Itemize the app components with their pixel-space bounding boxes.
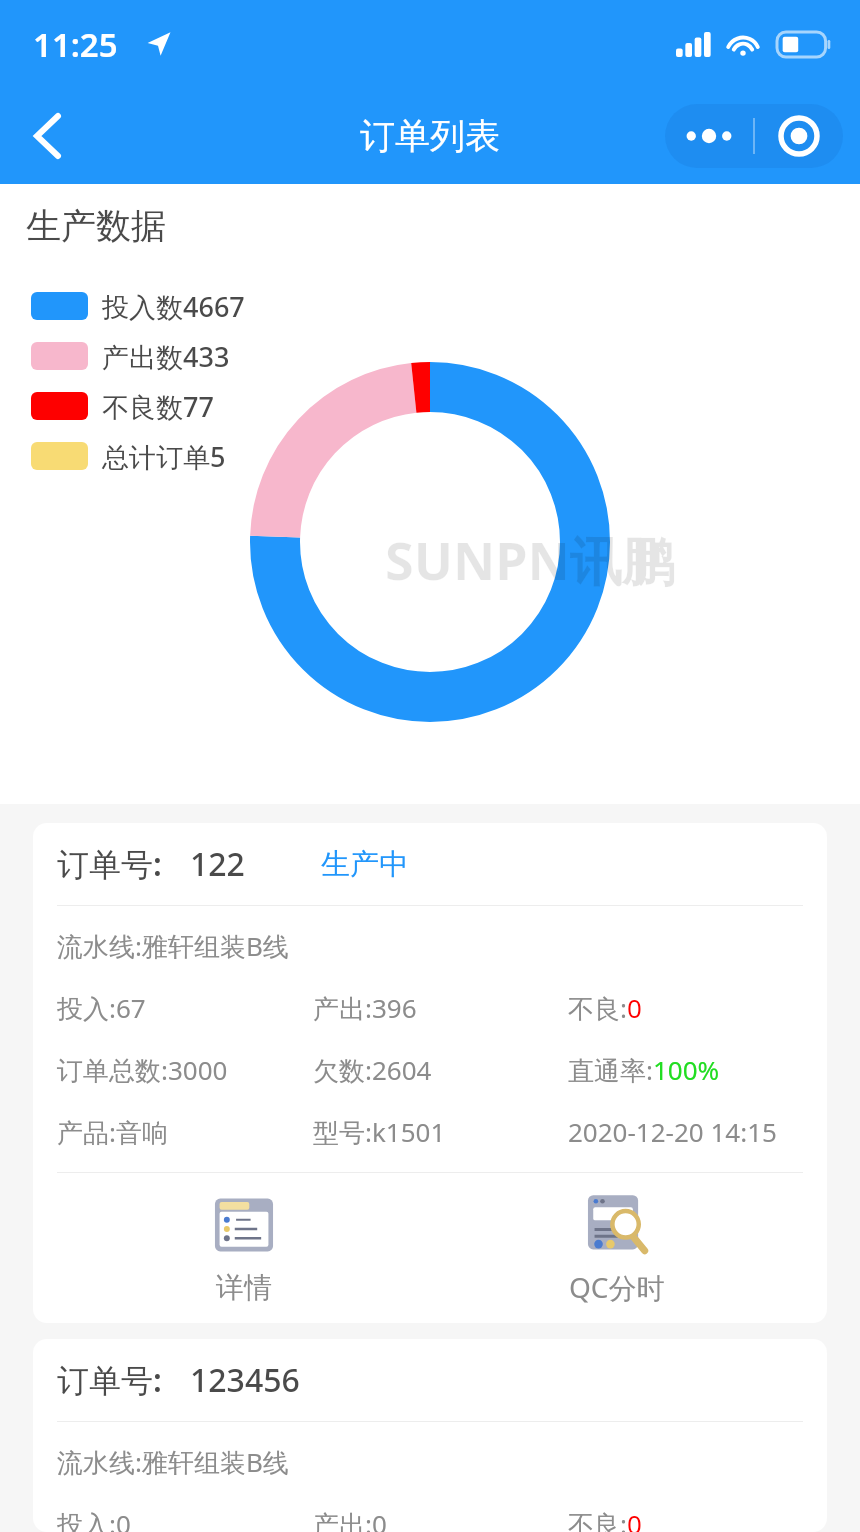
staticText: 欠数:2604 xyxy=(313,1052,568,1088)
staticText: 123456 xyxy=(190,1358,300,1402)
staticText: 订单列表 xyxy=(360,114,500,158)
staticText: 2020-12-20 14:15 xyxy=(568,1114,803,1149)
staticText: 不良:0 xyxy=(568,1506,803,1532)
staticText: 总计订单5 xyxy=(102,438,226,475)
staticText: 11:25 xyxy=(33,22,118,67)
staticText: 直通率:100% xyxy=(568,1052,803,1088)
staticText: 订单号: xyxy=(57,842,162,886)
staticText: SUNPN讯鹏 xyxy=(385,524,674,595)
staticText: 产出:396 xyxy=(313,990,568,1026)
staticText: QC分时 xyxy=(569,1268,665,1306)
staticText: 投入数4667 xyxy=(102,288,245,325)
button[interactable]: QC分时 xyxy=(430,1173,803,1323)
staticText: 流水线:雅轩组装B线 xyxy=(57,928,289,964)
button[interactable]: 不良数77 xyxy=(31,381,214,431)
staticText: 生产数据 xyxy=(26,204,166,248)
staticText: 订单总数:3000 xyxy=(57,1052,313,1088)
button[interactable]: 订单号: xyxy=(33,823,827,1323)
staticText: 详情 xyxy=(216,1270,272,1305)
staticText: 不良:0 xyxy=(568,990,803,1026)
staticText: 投入:0 xyxy=(57,1506,313,1532)
staticText: 订单号: xyxy=(57,1358,162,1402)
button[interactable]: Back xyxy=(0,88,92,184)
button[interactable]: 订单号: xyxy=(33,1339,827,1532)
staticText: 投入:67 xyxy=(57,990,313,1026)
button[interactable]: More options xyxy=(665,104,843,168)
staticText: 产品:音响 xyxy=(57,1114,313,1150)
button[interactable]: 投入数4667 xyxy=(31,281,245,331)
staticText: 122 xyxy=(190,842,245,886)
button[interactable]: 产出数433 xyxy=(31,331,230,381)
button[interactable]: 总计订单5 xyxy=(31,431,226,481)
staticText: 不良数77 xyxy=(102,388,214,425)
button[interactable]: 详情 xyxy=(57,1173,430,1323)
staticText: 流水线:雅轩组装B线 xyxy=(57,1444,289,1480)
staticText: 产出数433 xyxy=(102,338,230,375)
staticText: 型号:k1501 xyxy=(313,1114,568,1150)
staticText: 生产中 xyxy=(321,846,408,883)
staticText: 产出:0 xyxy=(313,1506,568,1532)
